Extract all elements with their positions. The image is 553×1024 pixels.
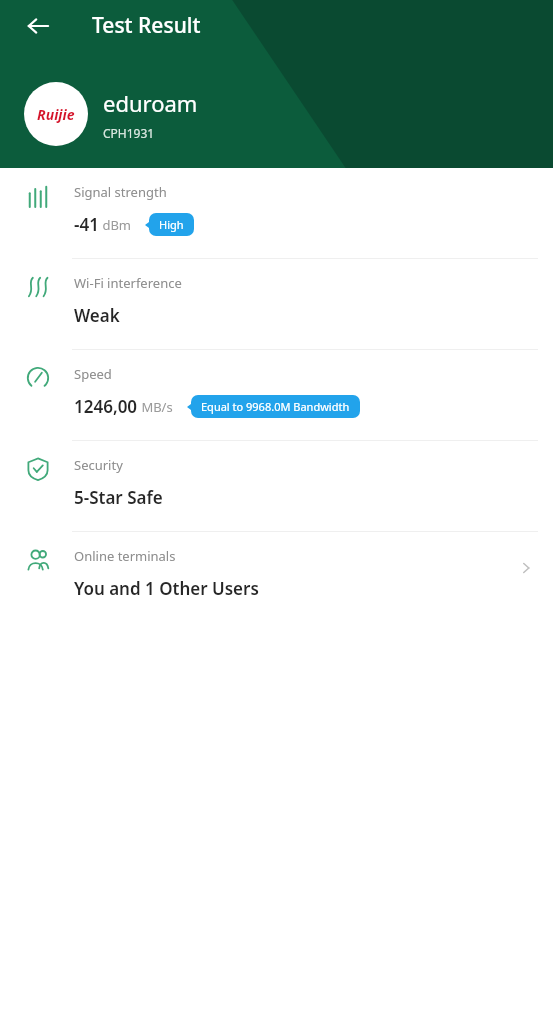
staticText: Ruijie xyxy=(37,105,75,124)
staticText: -41 xyxy=(74,213,99,236)
staticText: Online terminals xyxy=(74,547,176,565)
staticText: Test Result xyxy=(92,11,201,40)
staticText: Wi-Fi interference xyxy=(74,274,182,292)
staticText: High xyxy=(159,217,184,232)
staticText: You and 1 Other Users xyxy=(74,577,259,600)
staticText: dBm xyxy=(99,216,131,234)
staticText: eduroam xyxy=(103,88,198,118)
staticText: 1246,00 xyxy=(74,395,138,418)
staticText: MB/s xyxy=(138,398,173,416)
button[interactable]: Signal strength xyxy=(0,168,553,258)
staticText: Speed xyxy=(74,365,112,383)
staticText: 5-Star Safe xyxy=(74,486,163,509)
button[interactable]: Security xyxy=(0,441,553,531)
staticText: CPH1931 xyxy=(103,125,155,141)
staticText: Security xyxy=(74,456,123,474)
button[interactable]: Online terminals xyxy=(0,532,553,622)
staticText: Weak xyxy=(74,304,120,327)
staticText: Signal strength xyxy=(74,183,167,201)
button[interactable]: Speed xyxy=(0,350,553,440)
other: Open online terminals xyxy=(514,556,538,580)
button[interactable]: Back xyxy=(16,4,60,48)
button[interactable]: Wi-Fi interference xyxy=(0,259,553,349)
staticText: Equal to 9968.0M Bandwidth xyxy=(201,399,350,414)
